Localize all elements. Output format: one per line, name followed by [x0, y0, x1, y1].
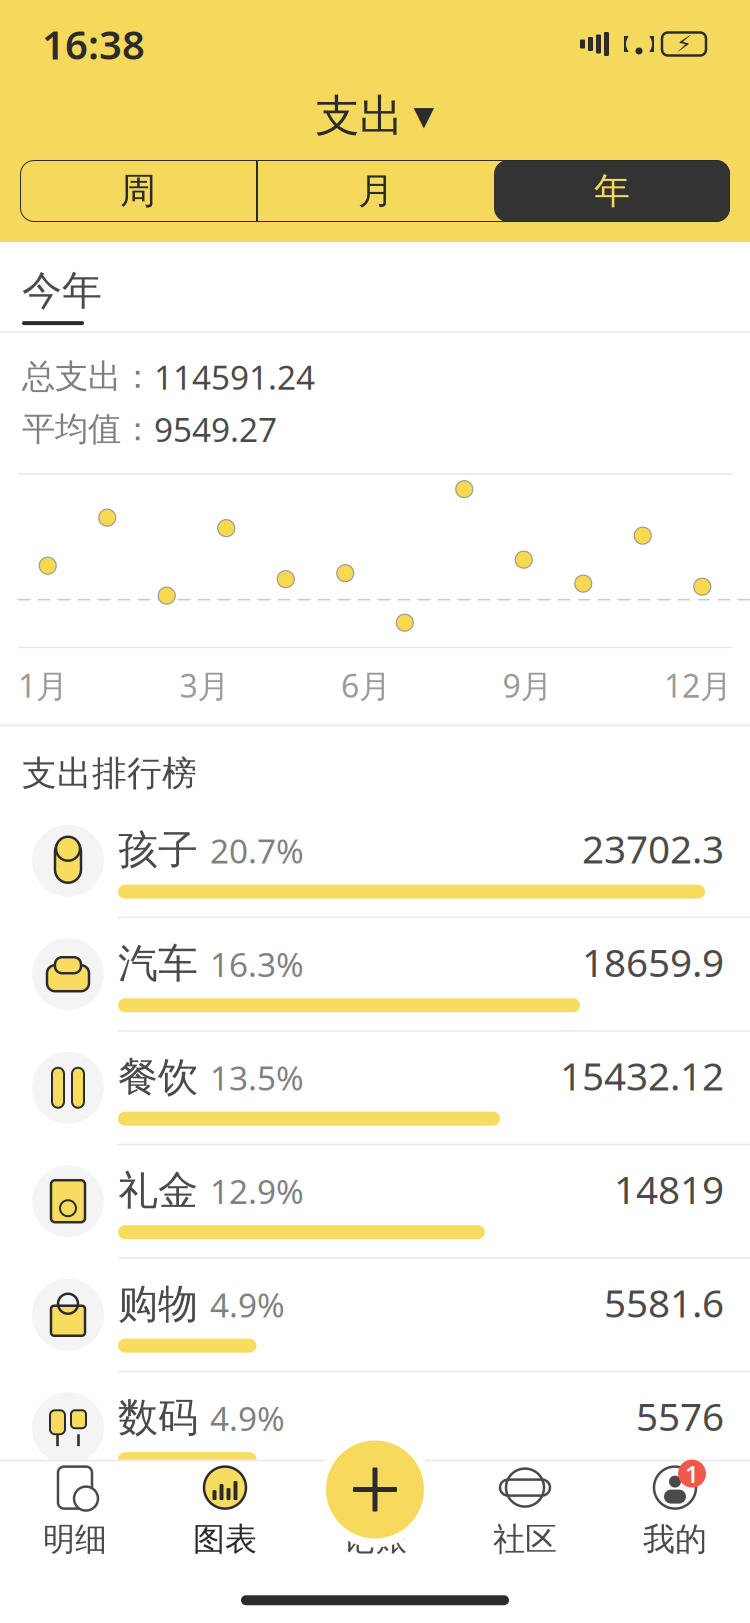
button[interactable]: 汽车	[0, 917, 750, 1030]
staticText: 6月	[341, 664, 391, 707]
staticText: 9549.27	[154, 407, 277, 451]
staticText: 今年	[22, 266, 102, 315]
staticText: 礼金	[118, 1166, 198, 1215]
staticText: 4.9%	[210, 1282, 285, 1327]
staticText: 18659.9	[582, 936, 724, 988]
staticText: 居家	[118, 1507, 198, 1556]
staticText: 114591.24	[154, 355, 315, 399]
button[interactable]: 居家	[0, 1484, 750, 1598]
staticText: 孩子	[118, 826, 198, 875]
staticText: 4.1%	[210, 1509, 285, 1554]
staticText: 15432.12	[560, 1050, 724, 1101]
staticText: 4744	[636, 1504, 724, 1555]
button[interactable]: 年	[494, 160, 730, 222]
button[interactable]: 周	[20, 160, 256, 222]
button[interactable]: 餐饮	[0, 1030, 750, 1144]
button[interactable]: 记账	[317, 1431, 433, 1547]
staticText: 9月	[502, 664, 552, 707]
staticText: 4.9%	[210, 1396, 285, 1440]
staticText: 16.3%	[210, 942, 304, 986]
staticText: 社区	[493, 1520, 557, 1559]
staticText: 1月	[18, 664, 68, 707]
staticText: 20.7%	[210, 828, 304, 873]
staticText: 图表	[193, 1520, 257, 1559]
button[interactable]: 图表	[150, 1461, 300, 1561]
staticText: 平均值：	[22, 409, 154, 449]
staticText: 16:38	[42, 17, 145, 70]
staticText: ⚡︎	[676, 31, 692, 57]
staticText: 数码	[118, 1393, 198, 1442]
staticText: 我的	[643, 1520, 707, 1559]
staticText: 12.9%	[210, 1169, 304, 1213]
staticText: 5581.6	[604, 1277, 724, 1328]
staticText: 支出排行榜	[22, 752, 197, 795]
staticText: ▼	[413, 101, 434, 131]
staticText: 支出	[315, 89, 403, 143]
staticText: 14819	[614, 1163, 724, 1215]
staticText: 餐饮	[118, 1053, 198, 1102]
button[interactable]: 购物	[0, 1257, 750, 1371]
staticText: 汽车	[118, 939, 198, 988]
staticText: 年	[594, 169, 630, 213]
staticText: 购物	[118, 1280, 198, 1329]
staticText: 月	[358, 169, 394, 213]
staticText: 12月	[664, 664, 732, 707]
staticText: 13.5%	[210, 1055, 304, 1100]
staticText: 记账	[343, 1520, 407, 1559]
button[interactable]: 支出	[315, 88, 434, 144]
button[interactable]: 社区	[450, 1461, 600, 1561]
button[interactable]: 孩子	[0, 805, 750, 917]
staticText: 1	[685, 1458, 699, 1490]
staticText: 23702.3	[582, 823, 724, 874]
button[interactable]: 数码	[0, 1371, 750, 1484]
button[interactable]: 明细	[0, 1461, 150, 1561]
staticText: 5576	[636, 1390, 724, 1442]
button[interactable]: 礼金	[0, 1144, 750, 1257]
button[interactable]: 1	[600, 1461, 750, 1561]
staticText: 总支出：	[22, 356, 154, 397]
staticText: 3月	[179, 664, 229, 707]
button[interactable]: 今年	[0, 242, 102, 325]
button[interactable]: 月	[258, 160, 494, 222]
staticText: 明细	[43, 1520, 107, 1559]
staticText: 周	[120, 169, 156, 213]
